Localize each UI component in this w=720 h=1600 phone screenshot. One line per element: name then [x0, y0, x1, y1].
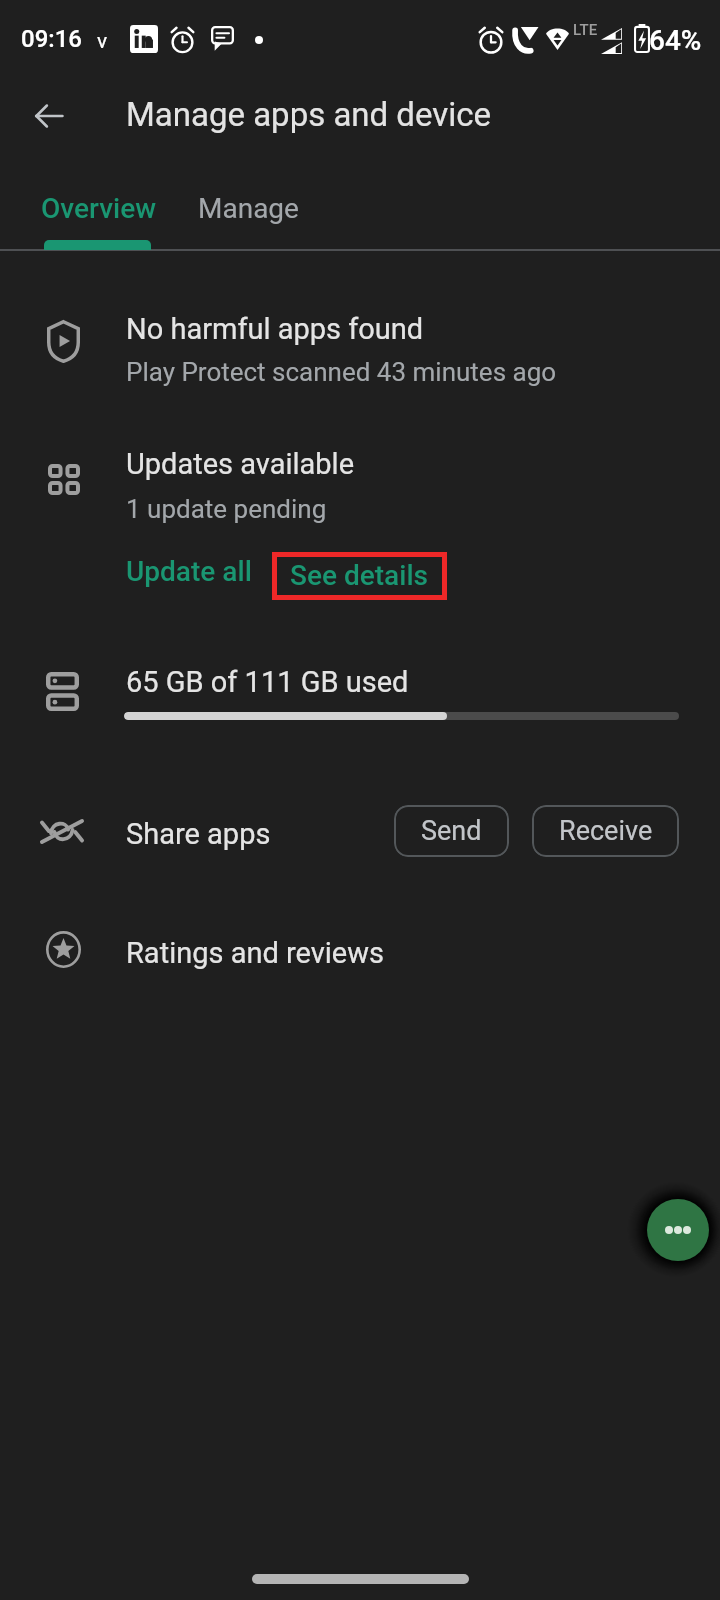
button[interactable]: Receive: [532, 805, 679, 857]
staticText: Overview: [41, 192, 156, 225]
button[interactable]: 65 GB of 111 GB used: [0, 640, 720, 750]
staticText: 1 update pending: [126, 494, 327, 524]
button[interactable]: More options: [647, 1199, 709, 1261]
button[interactable]: Overview: [8, 178, 188, 244]
staticText: 64%: [649, 24, 702, 57]
staticText: LTE: [573, 21, 598, 39]
staticText: 65 GB of 111 GB used: [126, 665, 409, 699]
button[interactable]: Ratings and reviews: [0, 912, 720, 1016]
button[interactable]: No harmful apps found: [0, 286, 720, 398]
button[interactable]: Manage: [188, 178, 308, 244]
button[interactable]: Back: [20, 87, 78, 145]
button[interactable]: Share apps: [0, 792, 380, 896]
staticText: Share apps: [126, 817, 271, 851]
staticText: Manage apps and device: [126, 95, 492, 134]
staticText: Receive: [559, 815, 653, 847]
staticText: Manage: [198, 192, 299, 225]
staticText: Updates available: [126, 447, 355, 481]
staticText: v: [97, 29, 108, 54]
staticText: Update all: [126, 555, 252, 588]
staticText: 09:16: [21, 25, 82, 53]
staticText: Play Protect scanned 43 minutes ago: [126, 357, 557, 387]
staticText: Ratings and reviews: [126, 936, 384, 970]
button[interactable]: See details: [272, 552, 447, 600]
staticText: No harmful apps found: [126, 312, 424, 346]
staticText: See details: [290, 559, 429, 592]
button[interactable]: Updates available: [0, 424, 720, 536]
staticText: Send: [421, 815, 482, 847]
button[interactable]: Send: [394, 805, 509, 857]
button[interactable]: Update all: [126, 555, 252, 588]
